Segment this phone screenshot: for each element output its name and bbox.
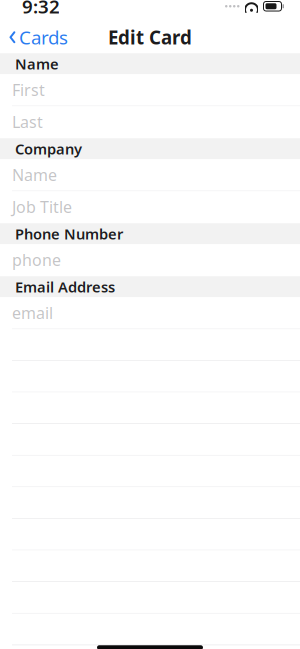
button[interactable]: First	[0, 74, 300, 106]
staticText: Cards	[19, 25, 68, 50]
staticText: Name	[12, 164, 57, 185]
staticText: email	[12, 302, 53, 323]
staticText: Job Title	[12, 196, 72, 217]
button[interactable]: Job Title	[0, 191, 300, 223]
staticText: First	[12, 79, 45, 100]
staticText: Last	[12, 111, 43, 132]
staticText: phone	[12, 249, 61, 270]
staticText: Email Address	[15, 277, 115, 296]
button[interactable]: email	[0, 297, 300, 329]
button[interactable]: phone	[0, 244, 300, 276]
staticText: 9:32	[22, 0, 60, 19]
button[interactable]: Last	[0, 106, 300, 138]
staticText: Phone Number	[15, 224, 123, 243]
staticText: Edit Card	[108, 25, 192, 50]
staticText: Company	[15, 139, 82, 158]
button[interactable]: Name	[0, 159, 300, 191]
button[interactable]: Cards	[0, 19, 68, 56]
staticText: Name	[15, 54, 59, 73]
